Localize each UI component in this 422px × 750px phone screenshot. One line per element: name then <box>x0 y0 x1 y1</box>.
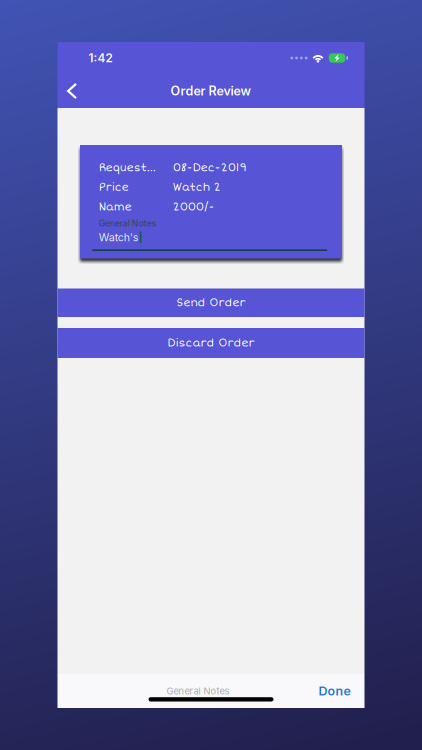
staticText: Request... <box>99 161 156 174</box>
staticText: Done <box>318 683 350 698</box>
staticText: 08-Dec-2019 <box>173 161 247 174</box>
staticText: Watch's <box>99 231 139 244</box>
staticText: General Notes <box>99 218 157 229</box>
staticText: Price <box>99 181 129 194</box>
button[interactable]: Discard Order <box>57 328 364 358</box>
staticText: 2000/- <box>173 200 215 213</box>
button[interactable]: Back <box>57 74 86 108</box>
button[interactable]: Send Order <box>57 288 364 317</box>
staticText: Order Review <box>170 83 251 99</box>
staticText: General Notes <box>166 685 229 697</box>
staticText: 1:42 <box>88 51 112 65</box>
staticText: Name <box>99 200 132 213</box>
staticText: Send Order <box>176 296 245 309</box>
button[interactable]: Done <box>312 677 356 704</box>
staticText: Discard Order <box>167 336 254 349</box>
staticText: Watch 2 <box>173 181 221 194</box>
